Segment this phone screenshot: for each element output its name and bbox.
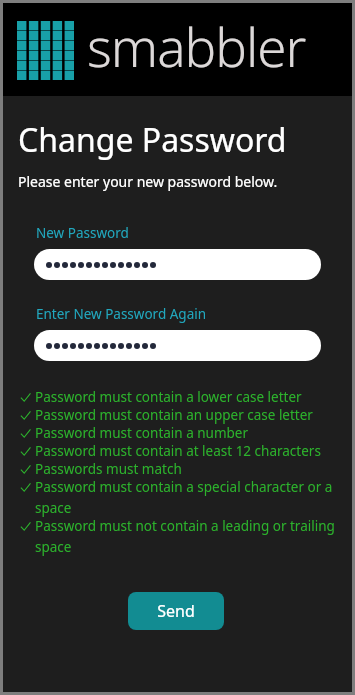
- staticText: New Password: [36, 224, 129, 242]
- staticText: Password must contain an upper case lett…: [35, 406, 313, 424]
- staticText: Password must contain a special characte…: [35, 478, 337, 517]
- staticText: Please enter your new password below.: [18, 172, 278, 191]
- staticText: Change Password: [18, 118, 287, 162]
- staticText: Password must contain a number: [35, 424, 249, 442]
- button[interactable]: Send: [128, 592, 224, 630]
- button[interactable]: [34, 330, 321, 361]
- staticText: Send: [157, 600, 195, 622]
- button[interactable]: [34, 249, 321, 280]
- staticText: Password must contain at least 12 charac…: [35, 442, 321, 460]
- staticText: Enter New Password Again: [36, 305, 207, 323]
- staticText: Password must not contain a leading or t…: [35, 517, 337, 556]
- staticText: Passwords must match: [35, 460, 182, 478]
- staticText: smabbler: [87, 10, 306, 82]
- staticText: Password must contain a lower case lette…: [35, 388, 302, 406]
